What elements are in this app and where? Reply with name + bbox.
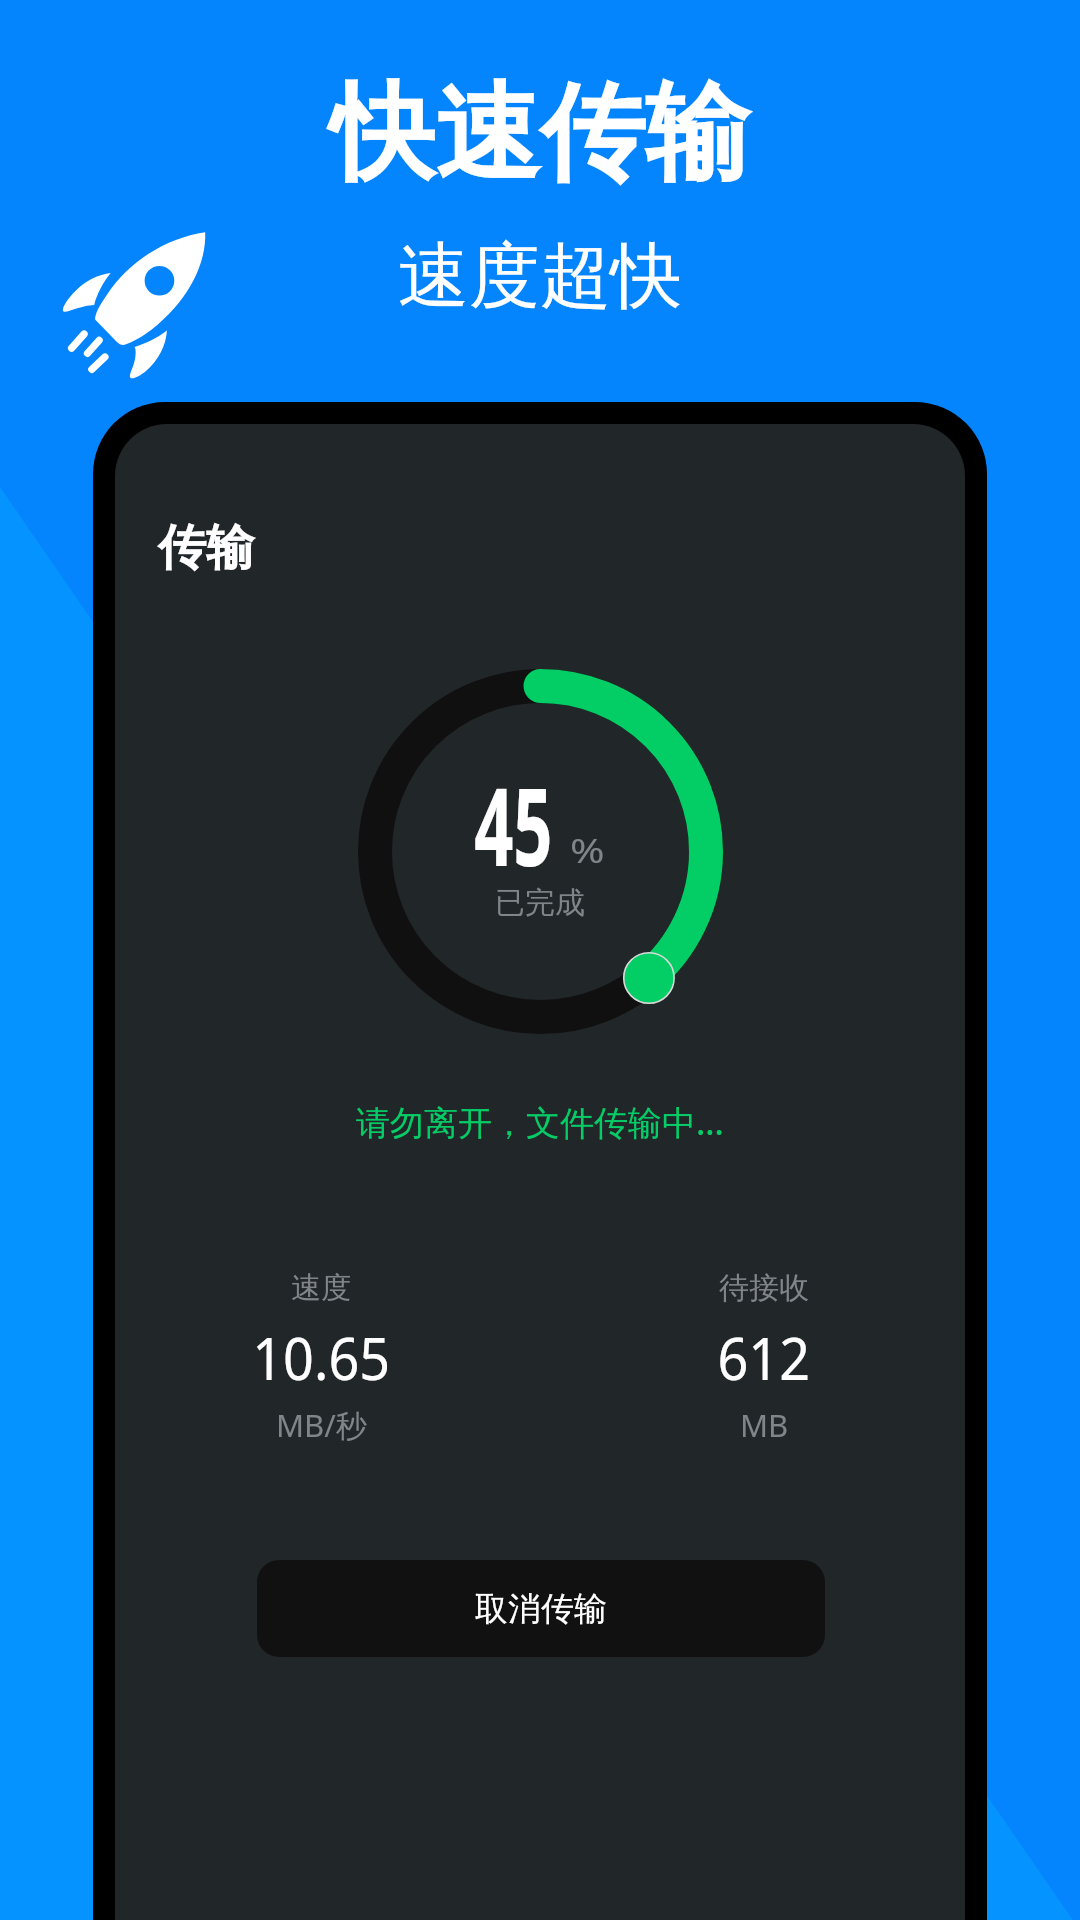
staticText: 速度超快 — [398, 232, 682, 321]
button[interactable]: 取消传输 — [257, 1560, 825, 1657]
staticText: 待接收 — [719, 1269, 809, 1307]
staticText: 请勿离开，文件传输中... — [356, 1099, 724, 1145]
staticText: % — [570, 829, 605, 873]
other: Transfer progress 45 percent — [358, 669, 723, 1034]
staticText: 快速传输 — [330, 68, 750, 200]
other: Fast transfer rocket — [60, 229, 210, 379]
staticText: 45 — [474, 752, 553, 898]
staticText: MB/秒 — [276, 1404, 367, 1446]
staticText: 传输 — [158, 518, 254, 578]
staticText: 10.65 — [252, 1318, 391, 1397]
staticText: 612 — [717, 1318, 810, 1397]
staticText: 取消传输 — [475, 1588, 607, 1630]
staticText: MB — [740, 1404, 789, 1446]
staticText: 速度 — [291, 1269, 351, 1307]
staticText: 已完成 — [495, 884, 585, 922]
